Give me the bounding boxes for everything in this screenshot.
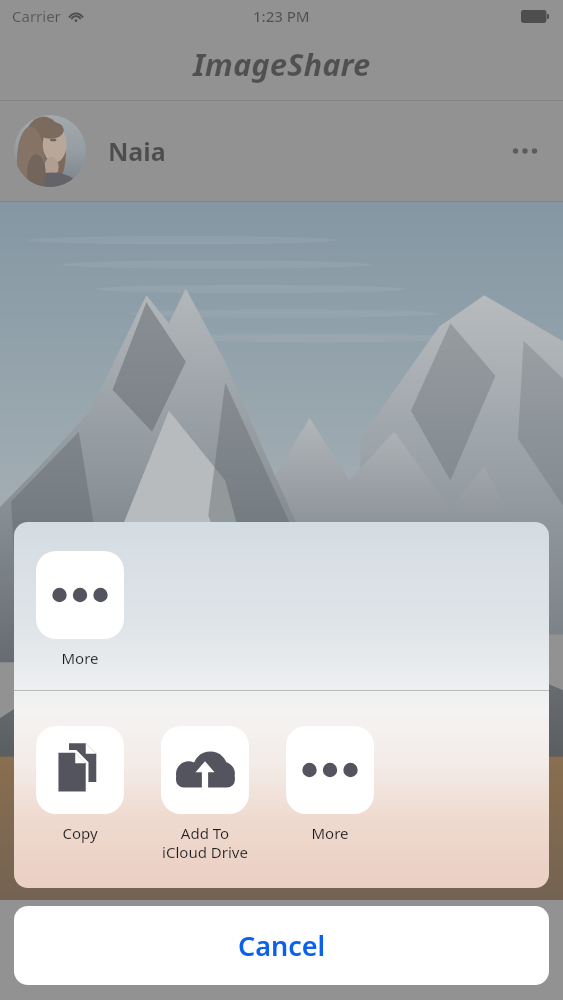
staticText: Naia bbox=[108, 134, 166, 168]
staticText: Cancel bbox=[238, 927, 326, 964]
button[interactable]: Add To iCloud Drive bbox=[161, 726, 249, 862]
staticText: More bbox=[61, 648, 99, 668]
button[interactable]: Naia bbox=[0, 101, 563, 201]
button[interactable]: More bbox=[36, 551, 124, 668]
staticText: More bbox=[311, 823, 349, 843]
staticText: 1:23 PM bbox=[253, 6, 310, 26]
staticText: ImageShare bbox=[193, 43, 371, 85]
button[interactable]: Cancel bbox=[14, 906, 549, 985]
staticText: Copy bbox=[62, 823, 98, 843]
button[interactable]: More bbox=[286, 726, 374, 843]
staticText: Add To iCloud Drive bbox=[162, 823, 248, 862]
button[interactable]: More options bbox=[501, 127, 549, 175]
staticText: Carrier bbox=[12, 6, 61, 26]
button[interactable]: Copy bbox=[36, 726, 124, 843]
